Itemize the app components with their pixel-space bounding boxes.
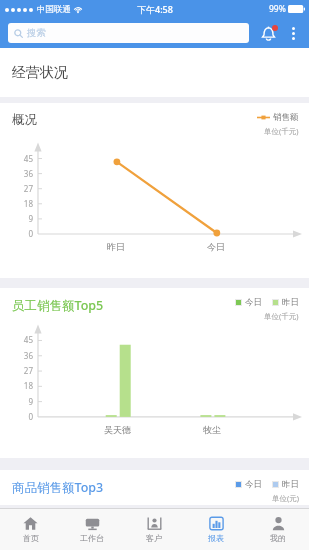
staticText: 45 <box>23 334 33 345</box>
staticText: 今日 <box>245 297 262 308</box>
staticText: 单位(千元) <box>264 126 299 136</box>
staticText: 搜索 <box>27 27 46 39</box>
staticText: 99% <box>269 3 286 15</box>
staticText: 单位(千元) <box>264 311 299 321</box>
staticText: 27 <box>23 365 33 376</box>
staticText: 36 <box>23 350 33 361</box>
staticText: 27 <box>23 183 33 194</box>
button[interactable]: Notifications <box>257 22 279 44</box>
staticText: 我的 <box>270 533 286 543</box>
staticText: 昨日 <box>282 479 299 490</box>
staticText: 今日 <box>207 241 225 252</box>
button[interactable]: More options <box>285 22 301 44</box>
staticText: 报表 <box>208 533 224 543</box>
staticText: 销售额 <box>273 112 299 123</box>
staticText: 吴天德 <box>104 424 131 435</box>
button[interactable]: 搜索 <box>8 23 249 43</box>
staticText: 商品销售额Top3 <box>12 479 104 496</box>
staticText: 45 <box>23 153 33 164</box>
staticText: 经营状况 <box>12 64 68 82</box>
staticText: 36 <box>23 168 33 179</box>
button[interactable]: 我的 <box>247 509 309 550</box>
staticText: 18 <box>23 380 33 391</box>
staticText: 0 <box>28 228 33 239</box>
staticText: 9 <box>28 213 33 224</box>
staticText: 牧尘 <box>203 424 221 435</box>
staticText: 9 <box>28 396 33 407</box>
staticText: 下午4:58 <box>137 3 173 15</box>
staticText: 昨日 <box>282 297 299 308</box>
button[interactable]: 首页 <box>0 509 61 550</box>
button[interactable]: 客户 <box>123 509 185 550</box>
staticText: 客户 <box>146 533 162 543</box>
staticText: 员工销售额Top5 <box>12 297 104 314</box>
staticText: 单位(元) <box>272 493 299 503</box>
staticText: 首页 <box>23 533 39 543</box>
staticText: 概况 <box>12 112 37 128</box>
staticText: 昨日 <box>107 241 125 252</box>
staticText: 工作台 <box>80 533 104 543</box>
button[interactable]: 报表 <box>185 509 247 550</box>
staticText: 18 <box>23 198 33 209</box>
button[interactable]: 工作台 <box>61 509 123 550</box>
staticText: 今日 <box>245 479 262 490</box>
staticText: 0 <box>28 411 33 422</box>
staticText: 中国联通 <box>37 4 71 15</box>
